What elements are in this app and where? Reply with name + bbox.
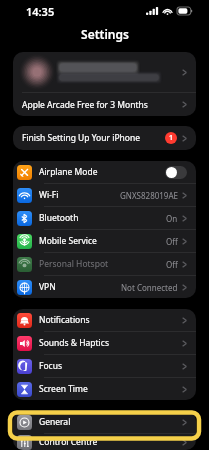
staticText: Settings [81, 26, 129, 42]
staticText: Screen Time [39, 383, 182, 395]
staticText: Mobile Service [39, 235, 166, 247]
staticText: Off [166, 236, 178, 247]
button[interactable]: Airplane Mode [13, 161, 196, 183]
button[interactable]: Personal Hotspot [13, 253, 196, 275]
staticText: Not Connected [121, 282, 178, 293]
button[interactable]: VPN [13, 276, 196, 298]
staticText: 1 [169, 133, 174, 143]
staticText: Wi-Fi [39, 189, 120, 201]
staticText: General [39, 416, 182, 428]
staticText: VPN [39, 281, 121, 293]
staticText: Bluetooth [39, 212, 166, 224]
button[interactable]: Screen Time [13, 378, 196, 400]
staticText: Airplane Mode [39, 166, 165, 178]
staticText: Focus [39, 360, 182, 372]
button[interactable]: General [13, 411, 196, 433]
button[interactable]: Mobile Service [13, 230, 196, 252]
staticText: GNXS828019AE [120, 190, 178, 201]
button[interactable]: Focus [13, 355, 196, 377]
staticText: Finish Setting Up Your iPhone [22, 132, 165, 144]
button[interactable]: Control Centre [13, 434, 196, 450]
staticText: Off [166, 259, 178, 270]
button[interactable]: Apple Arcade Free for 3 Months [13, 93, 196, 116]
button[interactable]: Notifications [13, 309, 196, 331]
staticText: Apple Arcade Free for 3 Months [22, 99, 182, 111]
button[interactable]: Airplane Mode toggle, off [165, 166, 187, 179]
staticText: 14:35 [26, 4, 55, 19]
staticText: Control Centre [39, 436, 182, 448]
staticText: Notifications [39, 314, 182, 326]
button[interactable] [13, 52, 196, 92]
button[interactable]: Finish Setting Up Your iPhone [13, 126, 196, 150]
staticText: Personal Hotspot [39, 258, 166, 270]
staticText: Sounds & Haptics [39, 337, 182, 349]
button[interactable]: Wi-Fi [13, 184, 196, 206]
button[interactable]: Sounds & Haptics [13, 332, 196, 354]
staticText: On [166, 213, 178, 224]
button[interactable]: Bluetooth [13, 207, 196, 229]
